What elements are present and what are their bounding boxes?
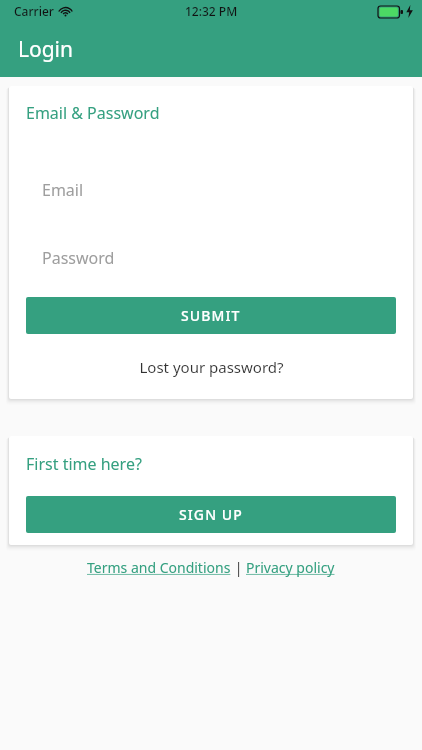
button[interactable]: SIGN UP bbox=[26, 496, 396, 533]
button[interactable]: SUBMIT bbox=[26, 297, 396, 334]
staticText: 12:32 PM bbox=[185, 3, 238, 19]
staticText: First time here? bbox=[26, 453, 142, 475]
staticText: Terms and Conditions bbox=[87, 558, 231, 577]
button[interactable]: Password bbox=[9, 238, 413, 278]
button[interactable]: Terms and Conditions bbox=[87, 558, 231, 577]
button[interactable]: Privacy policy bbox=[246, 558, 335, 577]
button[interactable]: Email bbox=[9, 170, 413, 210]
staticText: Email bbox=[42, 179, 84, 201]
staticText: Email & Password bbox=[26, 102, 160, 124]
staticText: SUBMIT bbox=[181, 306, 241, 325]
staticText: SIGN UP bbox=[179, 505, 243, 524]
staticText: | bbox=[231, 558, 246, 577]
staticText: Carrier bbox=[14, 3, 54, 19]
staticText: Login bbox=[18, 35, 74, 64]
button[interactable]: Lost your password? bbox=[9, 350, 413, 384]
staticText: Password bbox=[42, 247, 115, 269]
staticText: Lost your password? bbox=[139, 357, 284, 377]
staticText: Privacy policy bbox=[246, 558, 335, 577]
